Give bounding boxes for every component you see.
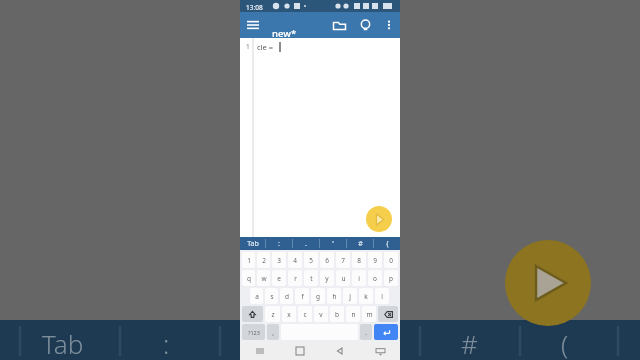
button[interactable]: q <box>242 270 255 286</box>
staticText: 2 <box>262 256 266 265</box>
button[interactable]: Hide keyboard <box>360 342 400 360</box>
staticText: g <box>316 292 320 301</box>
button[interactable]: o <box>368 270 382 286</box>
staticText: q <box>247 274 251 283</box>
staticText: 4 <box>293 256 297 265</box>
button[interactable]: i <box>352 270 366 286</box>
staticText: : <box>163 326 170 360</box>
button[interactable]: Backspace <box>378 306 398 322</box>
staticText: . <box>365 328 367 337</box>
staticText: 1 <box>246 42 250 51</box>
staticText: 8 <box>357 256 361 265</box>
button[interactable]: 8 <box>352 252 366 268</box>
button[interactable]: d <box>280 288 293 304</box>
button[interactable]: f <box>295 288 309 304</box>
button[interactable]: k <box>359 288 373 304</box>
staticText: 7 <box>341 256 345 265</box>
button[interactable]: 9 <box>368 252 382 268</box>
staticText: h <box>332 292 337 301</box>
button[interactable]: Hints <box>352 12 378 38</box>
button[interactable]: 5 <box>304 252 318 268</box>
button[interactable]: h <box>327 288 341 304</box>
staticText: 3 <box>277 256 281 265</box>
button[interactable]: l <box>375 288 389 304</box>
button[interactable]: t <box>304 270 318 286</box>
button[interactable]: n <box>346 306 360 322</box>
button[interactable]: Enter <box>374 324 398 340</box>
button[interactable]: x <box>282 306 296 322</box>
staticText: a <box>255 292 259 301</box>
button[interactable]: Shift <box>242 306 263 322</box>
staticText: ?123 <box>248 329 260 336</box>
button[interactable]: new* <box>266 12 326 38</box>
button[interactable]: Run <box>366 206 392 232</box>
staticText: e <box>277 274 281 283</box>
button[interactable]: 1 <box>242 252 255 268</box>
button[interactable]: , <box>267 324 279 340</box>
button[interactable]: Back <box>320 342 360 360</box>
staticText: n <box>351 310 356 319</box>
button[interactable]: v <box>314 306 328 322</box>
staticText: ( <box>561 326 569 360</box>
staticText: j <box>349 292 351 301</box>
button[interactable]: ( <box>374 237 400 250</box>
button[interactable]: 0 <box>384 252 398 268</box>
staticText: 0 <box>389 256 393 265</box>
staticText: Tab <box>247 239 259 249</box>
button[interactable]: s <box>265 288 278 304</box>
staticText: v <box>319 310 323 319</box>
button[interactable]: 3 <box>272 252 286 268</box>
staticText: l <box>381 292 383 301</box>
button[interactable]: j <box>343 288 357 304</box>
button[interactable]: Recents <box>240 342 280 360</box>
button[interactable]: p <box>384 270 398 286</box>
button[interactable]: # <box>347 237 373 250</box>
button[interactable]: : <box>266 237 292 250</box>
button[interactable]: c <box>298 306 312 322</box>
staticText: k <box>364 292 368 301</box>
button[interactable]: y <box>320 270 334 286</box>
button[interactable]: Home <box>280 342 320 360</box>
staticText: t <box>310 274 313 283</box>
staticText: new* <box>272 27 297 40</box>
button[interactable]: Open folder <box>326 12 352 38</box>
staticText: y <box>325 274 329 283</box>
button[interactable]: w <box>257 270 270 286</box>
button[interactable]: 2 <box>257 252 270 268</box>
staticText: . <box>305 239 307 249</box>
staticText: , <box>272 328 274 337</box>
staticText: b <box>335 310 339 319</box>
staticText: i <box>358 274 360 283</box>
staticText: f <box>301 292 304 301</box>
button[interactable]: r <box>288 270 302 286</box>
button[interactable]: . <box>293 237 319 250</box>
button[interactable]: ?123 <box>242 324 265 340</box>
button[interactable]: e <box>272 270 286 286</box>
staticText: 13:08 <box>246 3 263 12</box>
staticText: 9 <box>373 256 377 265</box>
button[interactable]: ' <box>320 237 346 250</box>
staticText: w <box>261 274 267 283</box>
button[interactable]: 7 <box>336 252 350 268</box>
button[interactable]: Menu <box>240 12 266 38</box>
staticText: c <box>303 310 307 319</box>
staticText: . <box>263 326 270 360</box>
staticText: o <box>373 274 377 283</box>
staticText: 1 <box>247 256 251 265</box>
button[interactable]: z <box>265 306 280 322</box>
staticText: 6 <box>325 256 329 265</box>
button[interactable]: . <box>360 324 372 340</box>
staticText: u <box>341 274 346 283</box>
button[interactable]: 4 <box>288 252 302 268</box>
button[interactable]: g <box>311 288 325 304</box>
button[interactable]: More options <box>378 14 400 36</box>
button[interactable]: Tab <box>240 237 265 250</box>
button[interactable]: 6 <box>320 252 334 268</box>
button[interactable]: m <box>362 306 376 322</box>
button[interactable]: u <box>336 270 350 286</box>
staticText: d <box>285 292 289 301</box>
staticText: cle = <box>257 42 274 52</box>
button[interactable]: b <box>330 306 344 322</box>
button[interactable]: a <box>250 288 263 304</box>
